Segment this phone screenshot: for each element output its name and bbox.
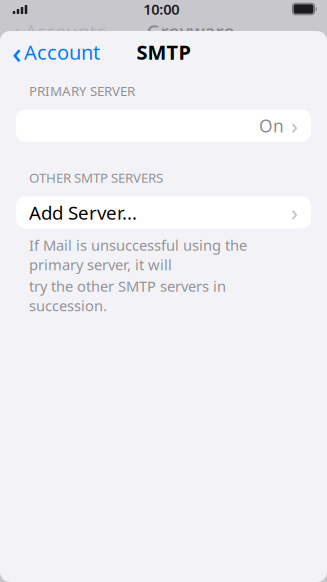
staticText: Accounts xyxy=(20,19,106,43)
button[interactable]: ‹ xyxy=(8,28,104,75)
staticText: Account xyxy=(24,39,100,65)
staticText xyxy=(275,19,315,43)
staticText: ‹ xyxy=(12,14,20,48)
staticText: On xyxy=(259,114,284,137)
staticText: PRIMARY SERVER xyxy=(29,82,135,100)
staticText: › xyxy=(291,111,298,140)
staticText: › xyxy=(291,198,298,226)
staticText: try the other SMTP servers in succession… xyxy=(29,276,226,315)
staticText: OTHER SMTP SERVERS xyxy=(29,169,163,186)
staticText: SMTP xyxy=(136,39,190,65)
staticText: Add Server... xyxy=(29,200,137,225)
staticText: Greyware xyxy=(146,19,234,43)
staticText: If Mail is unsuccessful using the primar… xyxy=(29,235,247,274)
button[interactable]: On xyxy=(16,110,311,142)
staticText: ‹ xyxy=(12,32,22,71)
staticText: 10:00 xyxy=(143,0,179,19)
button[interactable]: Add Server... xyxy=(16,196,311,228)
